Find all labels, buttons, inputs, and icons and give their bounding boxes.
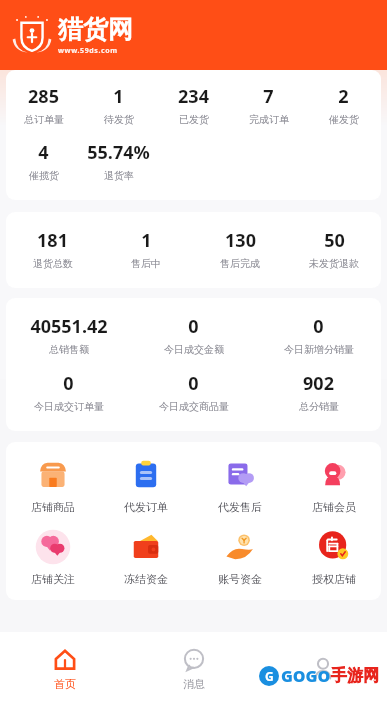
button[interactable]: 7 [231,84,306,126]
staticText: 总订单量 [24,113,64,126]
staticText: 285 [28,84,59,109]
staticText: 催发货 [329,113,359,126]
button[interactable]: 181 [6,228,99,270]
button[interactable]: 店铺会员 [287,456,381,514]
staticText: 55.74% [87,140,150,165]
staticText: 已发货 [179,113,209,126]
staticText: 181 [37,228,68,253]
button[interactable]: 40551.42 [6,314,131,356]
staticText: 猎货网 [58,14,133,45]
staticText: 今日新增分销量 [284,343,354,356]
staticText: 130 [225,228,256,253]
button[interactable]: 0 [131,371,256,413]
button[interactable]: 消息 [129,632,258,706]
button[interactable]: 50 [287,228,381,270]
staticText: 4 [38,140,49,165]
button[interactable]: 1 [81,84,156,126]
staticText: 授权店铺 [312,572,356,586]
staticText: 902 [303,371,334,396]
staticText: 今日成交订单量 [34,400,104,413]
staticText: 1 [113,84,124,109]
staticText: 0 [63,371,74,396]
staticText: 售后中 [131,257,161,270]
staticText: www.59ds.com [58,46,118,56]
staticText: 退货总数 [33,257,73,270]
staticText: 店铺商品 [31,500,75,514]
button[interactable]: 285 [6,84,81,126]
staticText: 0 [313,314,324,339]
button[interactable]: 0 [6,371,131,413]
button[interactable]: 130 [193,228,287,270]
staticText: 7 [263,84,274,109]
staticText: 2 [338,84,349,109]
staticText: 冻结资金 [124,572,168,586]
staticText: G [265,668,274,684]
button[interactable]: 4 [6,140,81,182]
button[interactable]: 0 [131,314,256,356]
staticText: 0 [188,314,199,339]
staticText: 代发订单 [124,500,168,514]
button[interactable]: 我的 [258,632,387,706]
staticText: 店铺关注 [31,572,75,586]
staticText: 待发货 [104,113,134,126]
staticText: 消息 [183,677,205,691]
button[interactable]: 店铺商品 [6,456,99,514]
button[interactable]: 234 [156,84,231,126]
staticText: 234 [178,84,209,109]
button[interactable]: 账号资金 [193,528,287,586]
button[interactable]: 1 [99,228,193,270]
staticText: 50 [324,228,345,253]
staticText: 售后完成 [220,257,260,270]
staticText: 今日成交商品量 [159,400,229,413]
staticText: 催揽货 [29,169,59,182]
staticText: 代发售后 [218,500,262,514]
staticText: 手游网 [331,666,379,686]
button[interactable]: 55.74% [81,140,156,182]
staticText: 店铺会员 [312,500,356,514]
button[interactable]: 店铺关注 [6,528,99,586]
button[interactable]: 0 [256,314,381,356]
button[interactable]: 冻结资金 [99,528,193,586]
staticText: 今日成交金额 [164,343,224,356]
staticText: 首页 [54,677,76,691]
staticText: 0 [188,371,199,396]
staticText: 1 [141,228,152,253]
staticText: 退货率 [104,169,134,182]
staticText: 总销售额 [49,343,89,356]
staticText: 账号资金 [218,572,262,586]
button[interactable]: 首页 [0,632,129,706]
staticText: 完成订单 [249,113,289,126]
staticText: 40551.42 [30,314,108,339]
button[interactable]: 代发售后 [193,456,287,514]
button[interactable]: 2 [306,84,381,126]
staticText: 总分销量 [299,400,339,413]
staticText: 未发货退款 [309,257,359,270]
button[interactable]: 代发订单 [99,456,193,514]
button[interactable]: 902 [256,371,381,413]
staticText: GOGO [281,665,331,687]
button[interactable]: 授权店铺 [287,528,381,586]
